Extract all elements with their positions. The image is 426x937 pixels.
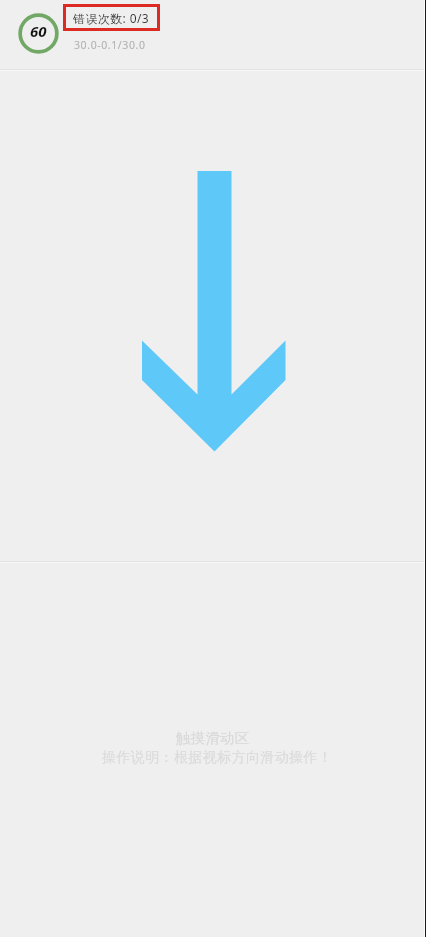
staticText: 30.0-0.1/30.0 [74,38,146,52]
staticText: 触摸滑动区 [176,729,250,747]
staticText: 操作说明：根据视标方向滑动操作！ [102,749,333,767]
other: 视标方向：向下 [0,0,426,937]
button[interactable]: 触摸滑动区 [0,562,426,937]
staticText: 错误次数: 0/3 [73,10,150,26]
button[interactable]: 错误次数: 0/3 [63,4,160,31]
staticText: 60 [30,21,47,41]
button[interactable]: 倒计时 60 秒 [18,13,59,54]
